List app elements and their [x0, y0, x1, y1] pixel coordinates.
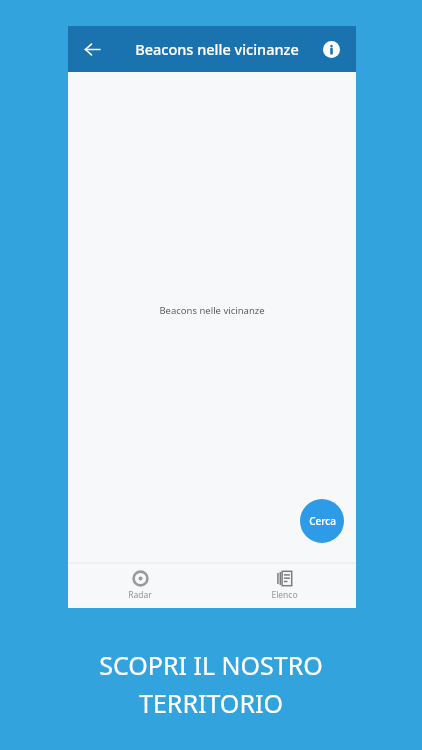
staticText: Radar — [128, 589, 152, 601]
staticText: Elenco — [271, 589, 298, 601]
staticText: Cerca — [309, 514, 336, 528]
button[interactable]: Elenco — [212, 563, 356, 608]
button[interactable]: Info — [316, 34, 346, 64]
staticText: Beacons nelle vicinanze — [118, 39, 316, 59]
button[interactable]: Cerca — [300, 499, 344, 543]
button[interactable]: Back — [76, 33, 108, 65]
button[interactable]: Radar — [68, 563, 212, 608]
staticText: Beacons nelle vicinanze — [68, 304, 356, 317]
staticText: SCOPRI IL NOSTRO — [0, 648, 422, 682]
staticText: TERRITORIO — [0, 686, 422, 720]
